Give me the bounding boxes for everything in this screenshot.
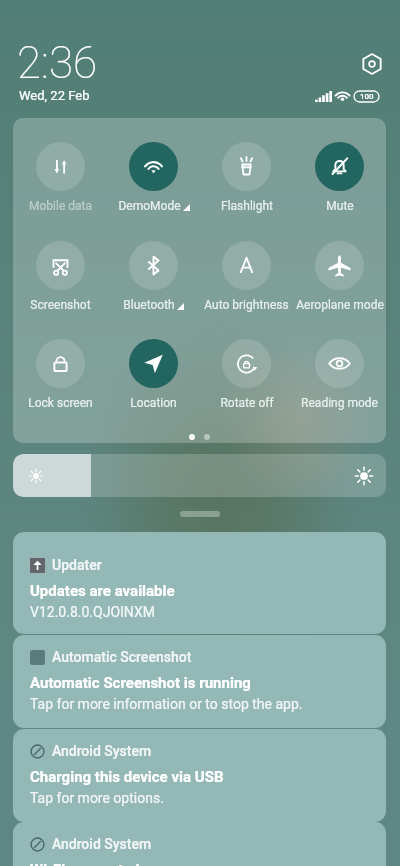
staticText: Screenshot [30, 298, 91, 312]
staticText: Tap for more options. [30, 790, 164, 806]
staticText: Rotate off [220, 396, 274, 410]
button[interactable]: Flashlight [200, 142, 293, 213]
staticText: Wed, 22 Feb [19, 88, 90, 103]
staticText: Reading mode [301, 396, 378, 410]
staticText: Automatic Screenshot is running [30, 674, 251, 692]
staticText: Mobile data [29, 199, 92, 213]
staticText: Location [130, 396, 177, 410]
staticText: Android System [52, 836, 152, 852]
staticText: Bluetooth [123, 298, 175, 312]
button[interactable]: Aeroplane mode [293, 241, 386, 312]
staticText: 100 [360, 92, 374, 101]
button[interactable]: Screenshot [13, 241, 107, 312]
staticText: Updates are available [30, 582, 175, 600]
button[interactable]: Rotate off [200, 339, 293, 410]
button[interactable]: Android System [13, 822, 386, 866]
button[interactable]: Mobile data [13, 142, 107, 213]
staticText: Charging this device via USB [30, 768, 224, 786]
staticText: DemoMode [118, 199, 181, 213]
button[interactable]: Reading mode [293, 339, 386, 410]
button[interactable]: Settings [360, 52, 384, 76]
staticText: Mute [326, 199, 354, 213]
button[interactable]: Auto brightness [200, 241, 293, 312]
staticText: Updater [52, 557, 102, 573]
staticText: 2:36 [17, 37, 98, 89]
staticText: Aeroplane mode [296, 298, 384, 312]
button[interactable]: Bluetooth [107, 241, 200, 312]
button[interactable]: Updater [13, 532, 386, 634]
button[interactable]: Automatic Screenshot [13, 635, 386, 728]
staticText: Flashlight [221, 199, 273, 213]
staticText: Tap for more information or to stop the … [30, 696, 303, 712]
staticText: Automatic Screenshot [52, 649, 192, 665]
button[interactable]: Location [107, 339, 200, 410]
staticText: Auto brightness [204, 298, 289, 312]
button[interactable]: DemoMode [107, 142, 200, 213]
button[interactable]: Android System [13, 729, 386, 822]
staticText: Wi-Fi connected [30, 861, 140, 866]
staticText: Lock screen [28, 396, 93, 410]
button[interactable]: Lock screen [13, 339, 107, 410]
button[interactable]: Mute [293, 142, 386, 213]
button[interactable]: Brightness [13, 454, 386, 497]
staticText: Android System [52, 743, 152, 759]
staticText: V12.0.8.0.QJOINXM [30, 604, 155, 620]
